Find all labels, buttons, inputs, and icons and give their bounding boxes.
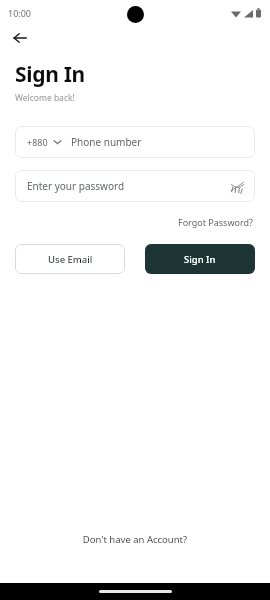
staticText: Forgot Password?: [178, 216, 253, 228]
staticText: Welcome back!: [15, 92, 75, 104]
staticText: 10:00: [8, 7, 32, 19]
staticText: Sign In: [184, 253, 216, 266]
staticText: Phone number: [71, 135, 142, 149]
button[interactable]: Back: [8, 26, 32, 50]
staticText: Use Email: [48, 253, 93, 266]
button[interactable]: Show password: [229, 178, 245, 194]
staticText: +880: [27, 136, 48, 148]
button[interactable]: Sign In: [145, 244, 255, 274]
staticText: Enter your password: [27, 179, 229, 193]
button[interactable]: Use Email: [15, 244, 125, 274]
staticText: Sign In: [15, 60, 85, 89]
button[interactable]: Forgot Password?: [176, 214, 255, 230]
button[interactable]: Enter your password: [15, 170, 255, 202]
staticText: Don't have an Account?: [0, 533, 270, 546]
button[interactable]: +880: [15, 126, 255, 158]
